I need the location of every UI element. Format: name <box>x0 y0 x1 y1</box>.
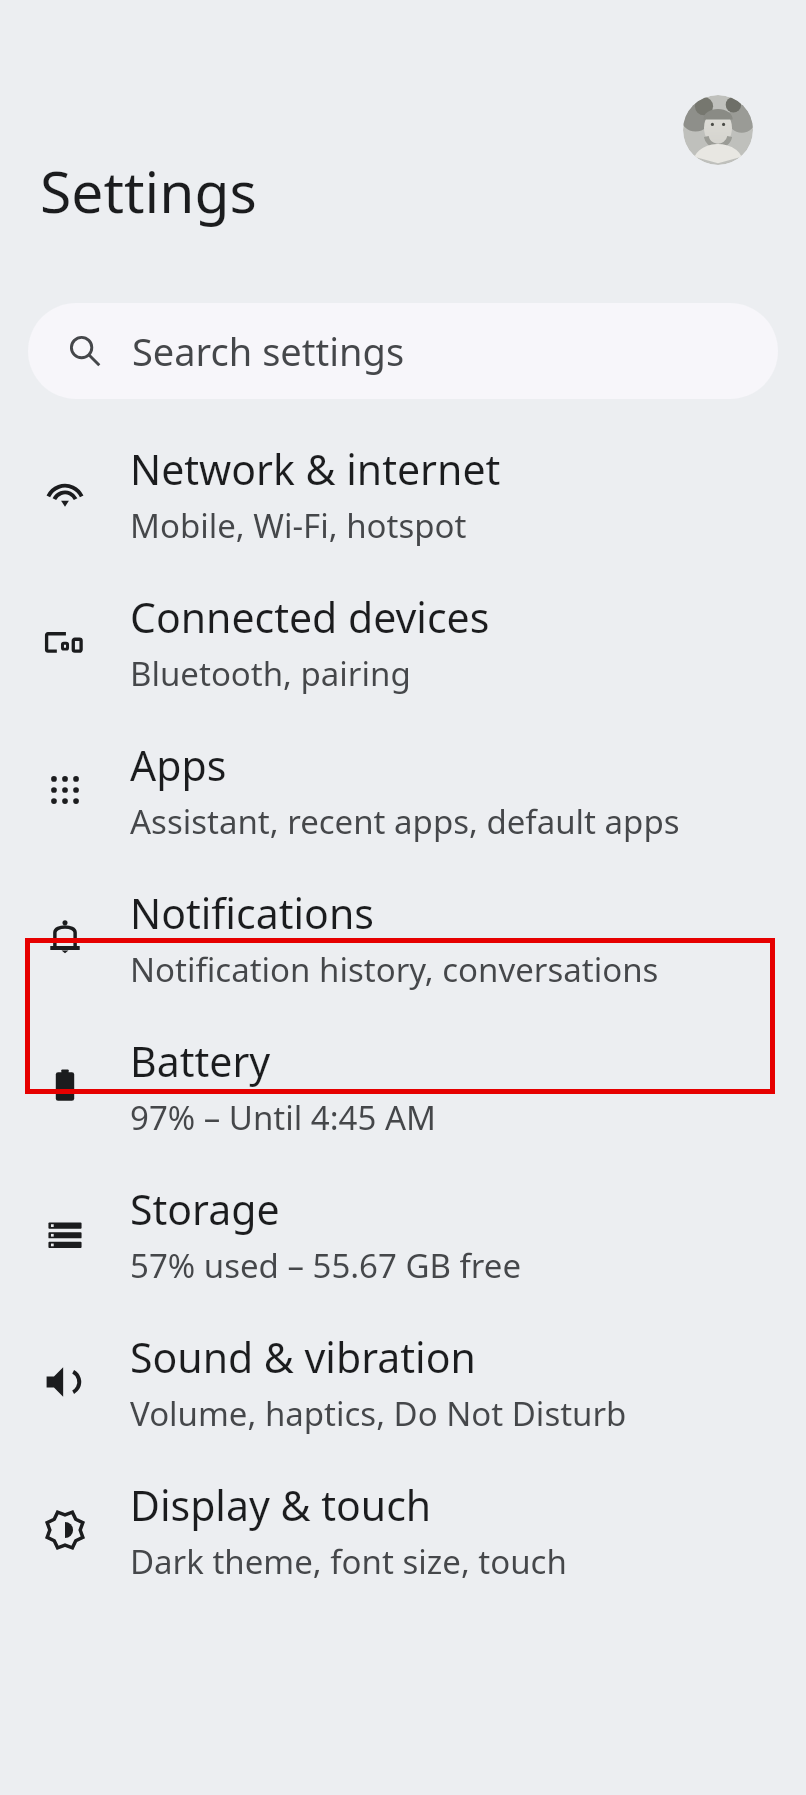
staticText: 57% used – 55.67 GB free <box>130 1243 522 1288</box>
staticText: Storage <box>130 1181 280 1237</box>
staticText: Network & internet <box>130 441 501 497</box>
staticText: Mobile, Wi-Fi, hotspot <box>130 503 467 548</box>
staticText: Display & touch <box>130 1477 432 1533</box>
staticText: Notifications <box>130 885 374 941</box>
staticText: Apps <box>130 737 227 793</box>
button[interactable]: Apps <box>0 716 806 864</box>
staticText: 97% – Until 4:45 AM <box>130 1095 436 1140</box>
staticText: Dark theme, font size, touch <box>130 1539 567 1584</box>
staticText: Search settings <box>132 325 405 377</box>
button[interactable]: Storage <box>0 1160 806 1308</box>
staticText: Volume, haptics, Do Not Disturb <box>130 1391 627 1436</box>
button[interactable]: Connected devices <box>0 568 806 716</box>
button[interactable]: Sound & vibration <box>0 1308 806 1456</box>
staticText: Settings <box>40 152 257 230</box>
staticText: Battery <box>130 1033 271 1089</box>
staticText: Bluetooth, pairing <box>130 651 411 696</box>
button[interactable]: Network & internet <box>0 420 806 568</box>
button[interactable]: Notifications <box>0 864 806 1012</box>
button[interactable]: Account profile <box>683 95 753 165</box>
staticText: Assistant, recent apps, default apps <box>130 799 680 844</box>
staticText: Notification history, conversations <box>130 947 659 992</box>
button[interactable]: Search settings <box>28 303 778 399</box>
button[interactable]: Display & touch <box>0 1456 806 1604</box>
staticText: Sound & vibration <box>130 1329 476 1385</box>
staticText: Connected devices <box>130 589 490 645</box>
button[interactable]: Battery <box>0 1012 806 1160</box>
